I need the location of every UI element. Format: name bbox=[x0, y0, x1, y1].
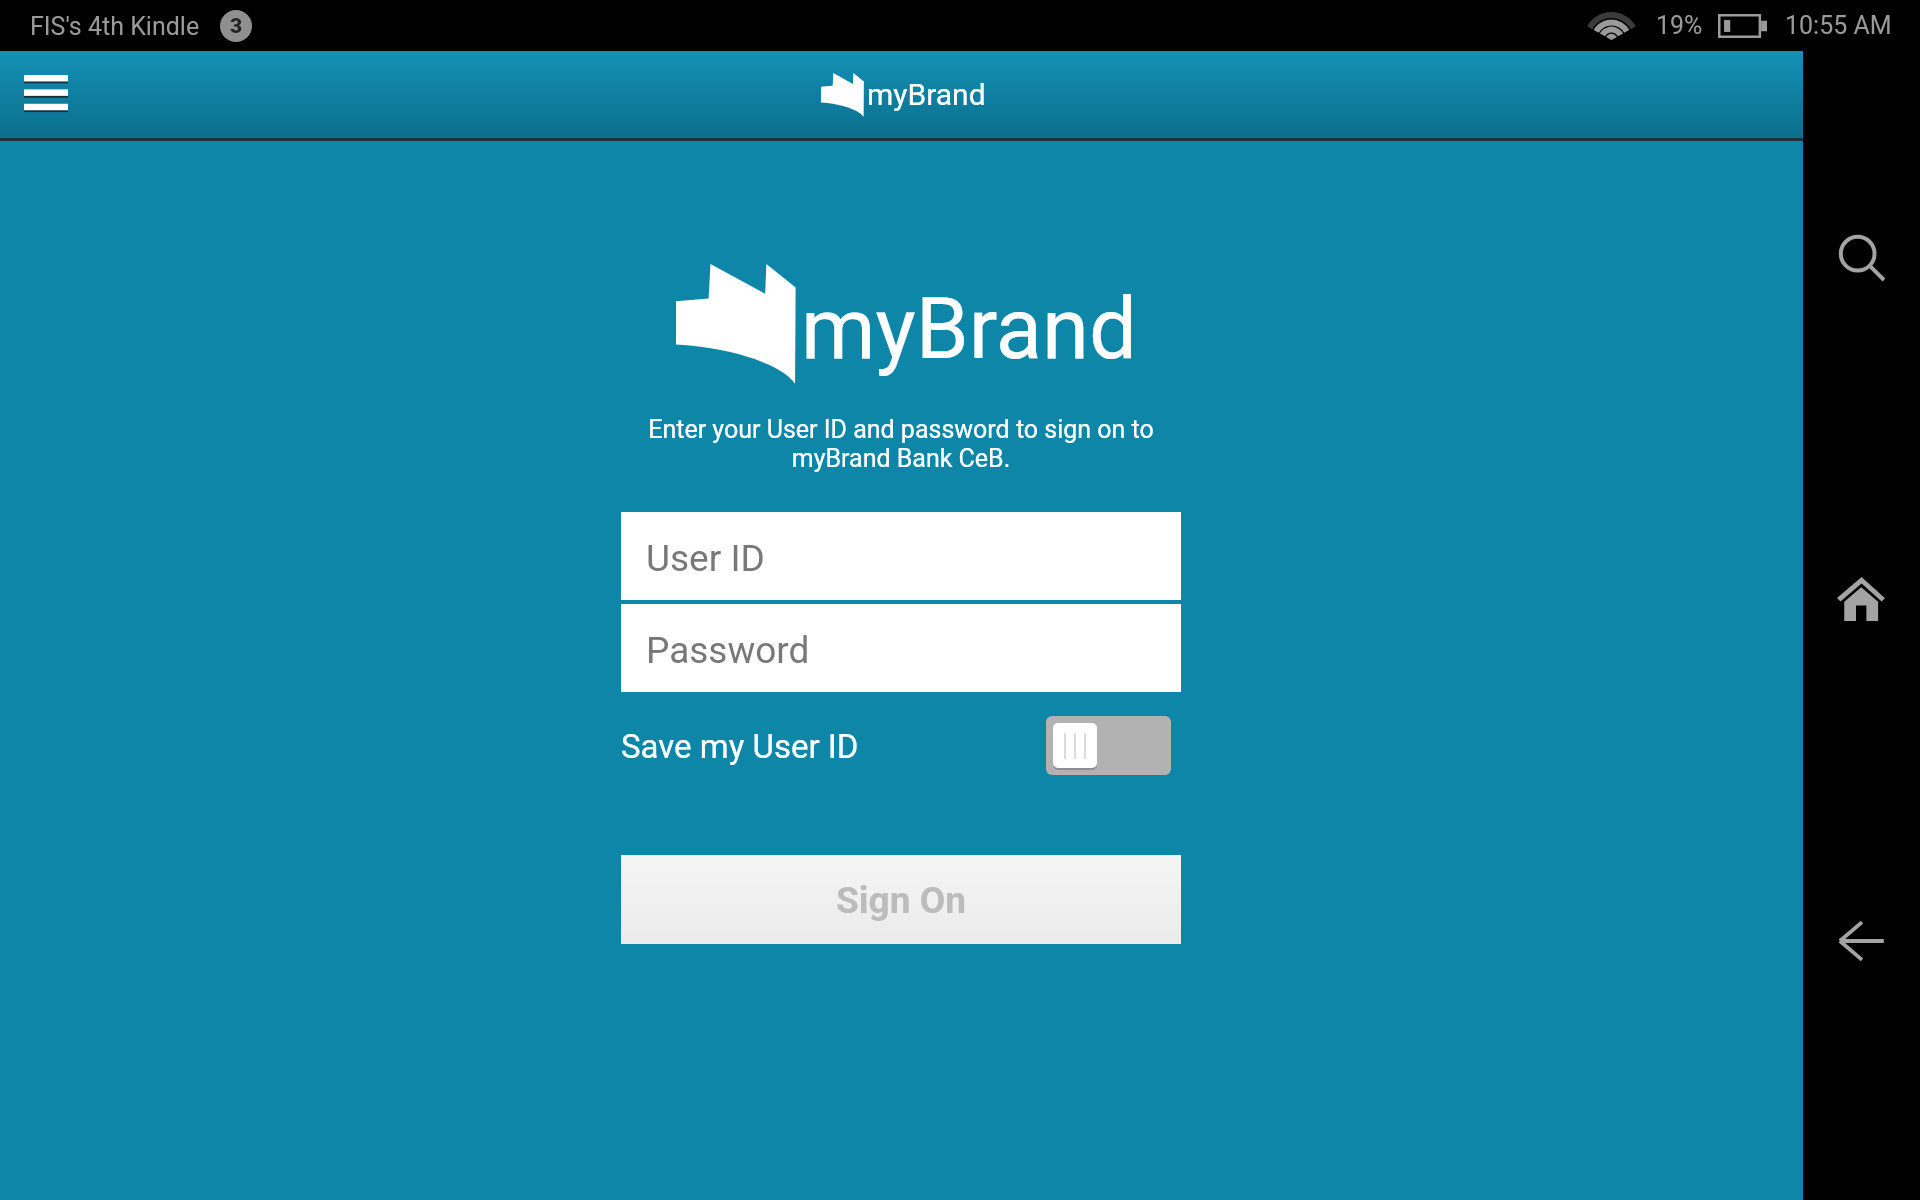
button[interactable]: Save my User ID switch, off bbox=[1046, 716, 1171, 775]
button[interactable]: Password bbox=[621, 604, 1181, 692]
button[interactable]: Open navigation menu bbox=[24, 75, 68, 112]
button[interactable]: Home bbox=[1822, 560, 1900, 638]
button[interactable]: User ID bbox=[621, 512, 1181, 600]
staticText: Sign On bbox=[836, 879, 966, 922]
staticText: Enter your User ID and password to sign … bbox=[601, 415, 1201, 473]
staticText: 19% bbox=[1656, 11, 1703, 40]
button[interactable]: Back bbox=[1822, 902, 1900, 980]
staticText: User ID bbox=[646, 537, 765, 580]
staticText: Password bbox=[646, 629, 810, 672]
button[interactable]: Sign On bbox=[621, 855, 1181, 944]
staticText: Save my User ID bbox=[621, 727, 859, 766]
staticText: FIS's 4th Kindle bbox=[30, 12, 200, 41]
staticText: 10:55 AM bbox=[1785, 11, 1892, 40]
staticText: myBrand bbox=[867, 77, 986, 112]
staticText: 3 bbox=[230, 14, 243, 39]
staticText: myBrand bbox=[801, 279, 1137, 379]
button[interactable]: Search bbox=[1822, 218, 1900, 296]
